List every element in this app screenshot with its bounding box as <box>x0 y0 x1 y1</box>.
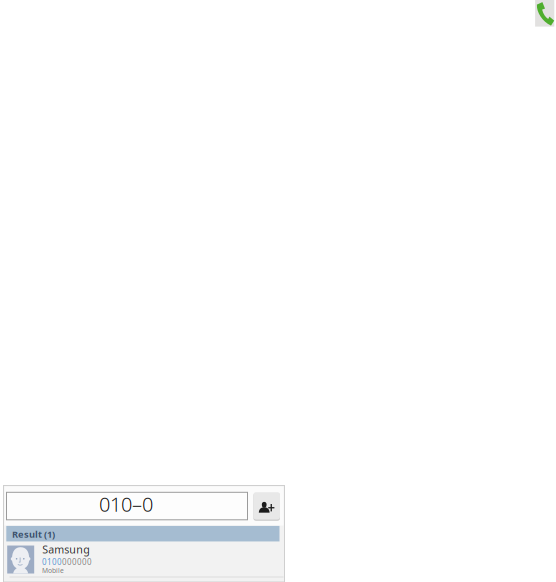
button[interactable]: Call <box>535 0 554 27</box>
staticText: 000000 <box>62 557 92 567</box>
staticText: Result (1) <box>12 528 55 540</box>
staticText: Samsung <box>42 542 90 556</box>
button[interactable]: Samsung <box>6 541 284 576</box>
staticText: Mobile <box>42 566 64 575</box>
button[interactable]: 010–0 <box>6 492 247 520</box>
staticText: 0100 <box>42 557 62 567</box>
button[interactable]: Add to contacts <box>253 492 280 521</box>
staticText: 010–0 <box>99 491 153 517</box>
